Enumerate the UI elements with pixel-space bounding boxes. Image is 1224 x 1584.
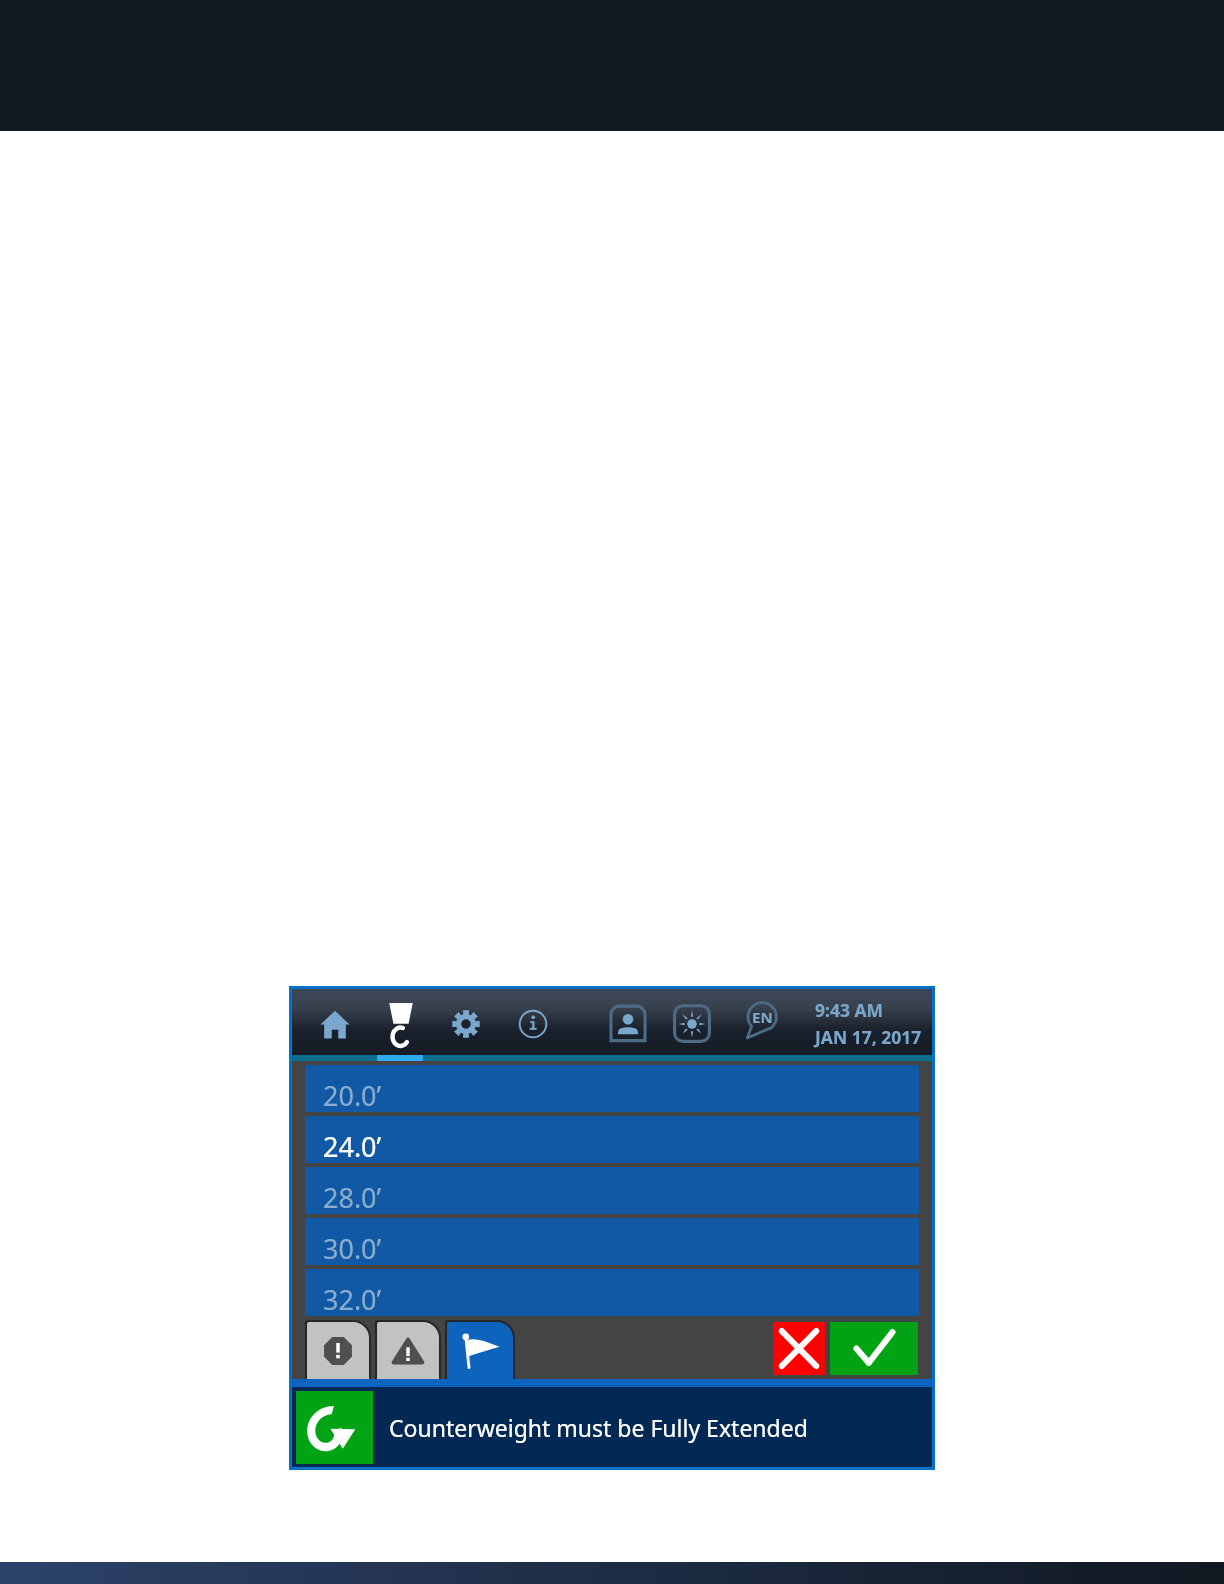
button[interactable]: Flags (445, 1320, 515, 1379)
staticText: 9:43 AM (815, 998, 884, 1022)
button[interactable]: 20.0’ (305, 1065, 919, 1112)
button[interactable]: 24.0’ (305, 1116, 919, 1163)
staticText: JAN 17, 2017 (815, 1025, 922, 1049)
staticText: 32.0’ (323, 1281, 382, 1318)
button[interactable]: Language (737, 998, 785, 1046)
button[interactable]: Settings (442, 1000, 490, 1048)
button[interactable]: 32.0’ (305, 1269, 919, 1316)
button[interactable]: Brightness (668, 1000, 716, 1048)
button[interactable]: Cancel (773, 1322, 825, 1375)
button[interactable]: Warnings (375, 1320, 441, 1379)
button[interactable]: Stop alarms (305, 1320, 371, 1379)
staticText: 28.0’ (323, 1179, 382, 1216)
button[interactable]: Hook (377, 1001, 425, 1049)
button[interactable]: Counterweight must be Fully Extended (292, 1387, 932, 1467)
staticText: 24.0’ (323, 1128, 382, 1165)
button[interactable]: Info (509, 1000, 557, 1048)
button[interactable]: Confirm (830, 1322, 918, 1375)
staticText: 20.0’ (323, 1077, 382, 1114)
button[interactable]: Operator (604, 1000, 652, 1048)
button[interactable]: 28.0’ (305, 1167, 919, 1214)
button[interactable]: 30.0’ (305, 1218, 919, 1265)
staticText: EN (752, 1007, 773, 1027)
staticText: Counterweight must be Fully Extended (389, 1412, 808, 1443)
staticText: 30.0’ (323, 1230, 382, 1267)
button[interactable]: Home (311, 1001, 359, 1049)
